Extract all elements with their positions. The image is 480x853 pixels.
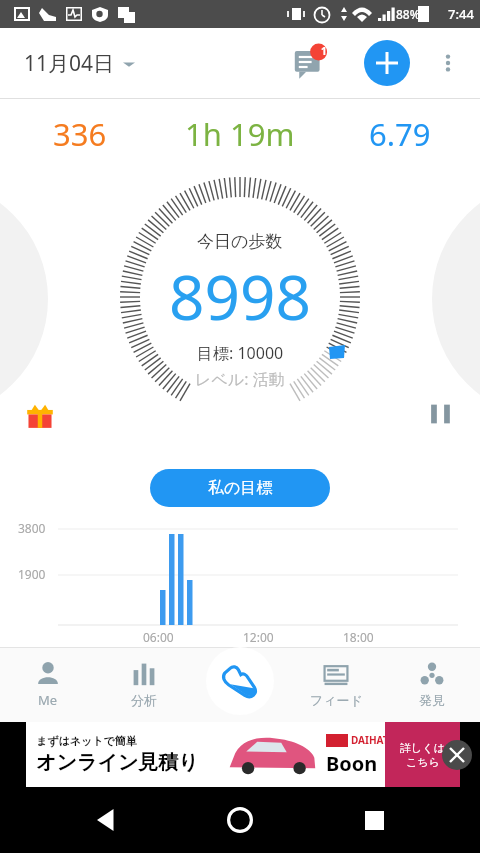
button[interactable]: フィード bbox=[288, 647, 384, 722]
button[interactable]: Me bbox=[0, 647, 96, 722]
button[interactable]: Steps bbox=[192, 647, 288, 722]
button[interactable]: 分析 bbox=[96, 647, 192, 722]
button[interactable]: Rewards bbox=[24, 401, 56, 433]
staticText: フィード bbox=[310, 692, 363, 708]
staticText: 1h 19m bbox=[185, 113, 295, 155]
staticText: 分析 bbox=[131, 692, 157, 708]
staticText: 発見 bbox=[419, 692, 445, 708]
button[interactable]: Add bbox=[364, 40, 410, 86]
button[interactable]: 発見 bbox=[384, 647, 480, 722]
staticText: 06:00 bbox=[143, 629, 174, 645]
button[interactable]: Close ad bbox=[442, 740, 472, 770]
button[interactable]: Back bbox=[88, 800, 128, 840]
staticText: Boon bbox=[326, 750, 378, 777]
staticText: こちら bbox=[406, 755, 440, 769]
staticText: レベル: 活動 bbox=[195, 368, 285, 390]
button[interactable]: 336 bbox=[0, 99, 160, 169]
button[interactable]: Pause bbox=[428, 401, 454, 427]
staticText: オンライン見積り bbox=[36, 750, 199, 775]
staticText: 私の目標 bbox=[208, 478, 273, 498]
button[interactable]: 私の目標 bbox=[150, 469, 330, 507]
staticText: 8998 bbox=[169, 254, 311, 338]
button[interactable]: 6.79 bbox=[320, 99, 480, 169]
staticText: 88% bbox=[396, 6, 420, 22]
button[interactable]: Recent apps bbox=[354, 800, 394, 840]
staticText: 336 bbox=[53, 113, 107, 155]
staticText: まずはネットで簡単 bbox=[36, 734, 137, 748]
button[interactable]: 1h 19m bbox=[160, 99, 320, 169]
staticText: DAIHATSU bbox=[351, 733, 402, 747]
staticText: 6.79 bbox=[369, 113, 431, 155]
button[interactable]: Home bbox=[218, 798, 262, 842]
staticText: 今日の歩数 bbox=[197, 231, 283, 252]
staticText: 1900 bbox=[18, 566, 46, 582]
button[interactable]: Messages bbox=[290, 43, 330, 83]
staticText: 11月04日 bbox=[24, 49, 115, 78]
staticText: Me bbox=[38, 691, 58, 709]
staticText: 12:00 bbox=[243, 629, 274, 645]
staticText: 1 bbox=[321, 44, 327, 58]
staticText: 詳しくは bbox=[400, 741, 445, 755]
button[interactable]: 11月04日 bbox=[20, 45, 139, 82]
staticText: 3800 bbox=[18, 520, 46, 536]
staticText: 7:44 bbox=[448, 5, 474, 23]
button[interactable]: 詳しくは bbox=[385, 722, 460, 787]
staticText: 18:00 bbox=[343, 629, 374, 645]
button[interactable]: More options bbox=[428, 43, 468, 83]
staticText: 目標: 10000 bbox=[197, 342, 284, 364]
